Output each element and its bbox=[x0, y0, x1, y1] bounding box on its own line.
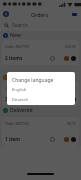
staticText: New bbox=[10, 32, 21, 39]
staticText: $24.30 bbox=[65, 44, 76, 49]
staticText: Ready bbox=[10, 74, 25, 81]
staticText: 2 items bbox=[5, 55, 23, 62]
staticText: Change language bbox=[12, 77, 54, 84]
staticText: Order 2847188 bbox=[5, 86, 29, 91]
button[interactable]: Order 2847166 bbox=[2, 117, 79, 146]
staticText: 3 items bbox=[5, 96, 23, 103]
staticText: Search bbox=[12, 22, 28, 29]
staticText: Order 2847193 bbox=[5, 44, 29, 49]
staticText: Orders bbox=[31, 11, 49, 18]
staticText: $8.75 bbox=[67, 121, 76, 126]
staticText: 1 item bbox=[5, 136, 21, 143]
staticText: Order 2847166 bbox=[5, 121, 29, 126]
button[interactable]: Deutsch bbox=[7, 96, 75, 104]
button[interactable]: Status bbox=[50, 56, 55, 61]
button[interactable]: Profile bbox=[3, 11, 9, 17]
button[interactable]: Order 2847188 bbox=[2, 82, 79, 106]
button[interactable]: English bbox=[7, 86, 75, 94]
button[interactable]: Search bbox=[0, 20, 81, 31]
button[interactable]: Order 2847193 bbox=[2, 40, 79, 65]
staticText: Delivered bbox=[10, 107, 33, 114]
button[interactable]: Status bbox=[50, 137, 55, 142]
staticText: $41.10 bbox=[65, 86, 76, 91]
button[interactable]: Inbox bbox=[71, 11, 78, 18]
